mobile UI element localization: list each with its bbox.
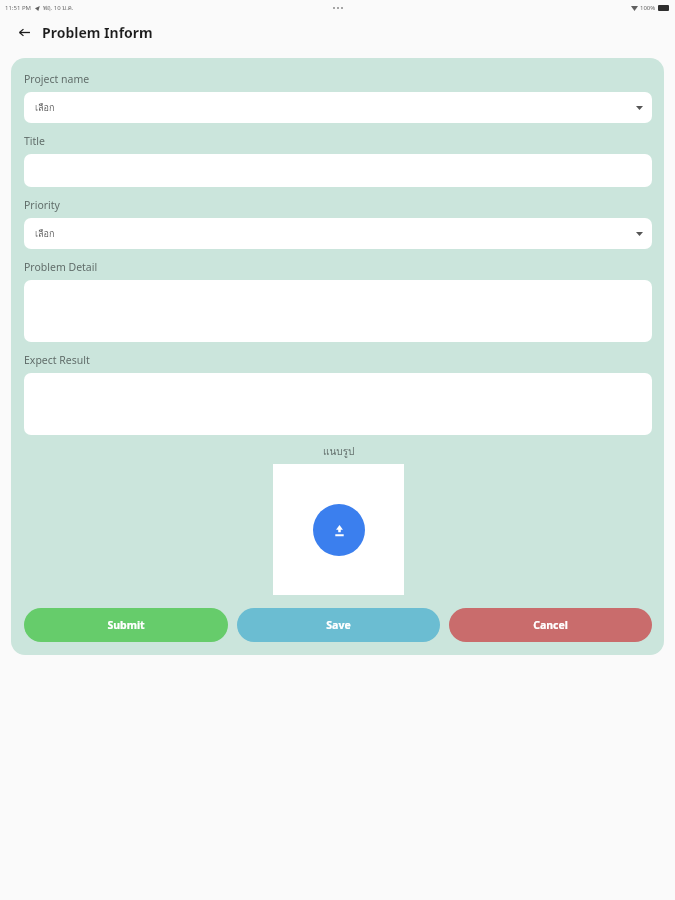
staticText: 100% xyxy=(640,4,656,12)
staticText: พฤ. 10 ม.ค. xyxy=(43,3,74,13)
staticText: Save xyxy=(326,618,351,632)
staticText: Project name xyxy=(24,72,90,86)
staticText: Problem Inform xyxy=(42,23,153,42)
staticText: Submit xyxy=(107,618,145,632)
staticText: Cancel xyxy=(533,618,568,632)
button[interactable]: เลือก xyxy=(24,218,652,249)
staticText: เลือก xyxy=(35,101,55,115)
staticText: Problem Detail xyxy=(24,260,98,274)
button[interactable]: Save xyxy=(237,608,440,642)
button[interactable]: Upload image xyxy=(273,464,404,595)
staticText: เลือก xyxy=(35,227,55,241)
button[interactable]: Submit xyxy=(24,608,228,642)
staticText: 11:51 PM xyxy=(5,4,31,12)
button[interactable]: Back xyxy=(13,21,35,43)
staticText: Expect Result xyxy=(24,353,90,367)
staticText: Title xyxy=(24,134,45,148)
staticText: แนบรูป xyxy=(323,444,355,460)
button[interactable]: Cancel xyxy=(449,608,652,642)
button[interactable]: เลือก xyxy=(24,92,652,123)
staticText: Priority xyxy=(24,198,60,212)
